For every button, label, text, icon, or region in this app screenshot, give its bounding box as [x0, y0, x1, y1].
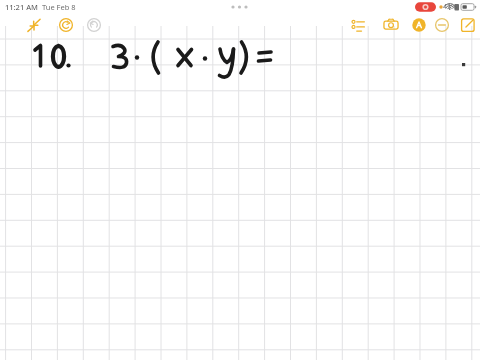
button[interactable]: New note: [458, 15, 478, 35]
button[interactable]: Redo: [84, 15, 104, 35]
button[interactable]: Camera: [381, 15, 401, 35]
button[interactable]: Collapse: [24, 15, 44, 35]
staticText: Tue Feb 8: [42, 2, 76, 12]
staticText: 43%: [443, 2, 457, 12]
button[interactable]: Undo: [56, 15, 76, 35]
button[interactable]: Pen: [409, 15, 429, 35]
staticText: 11:21 AM: [5, 2, 38, 12]
button[interactable]: Options: [348, 15, 368, 35]
button[interactable]: Eraser: [432, 15, 452, 35]
